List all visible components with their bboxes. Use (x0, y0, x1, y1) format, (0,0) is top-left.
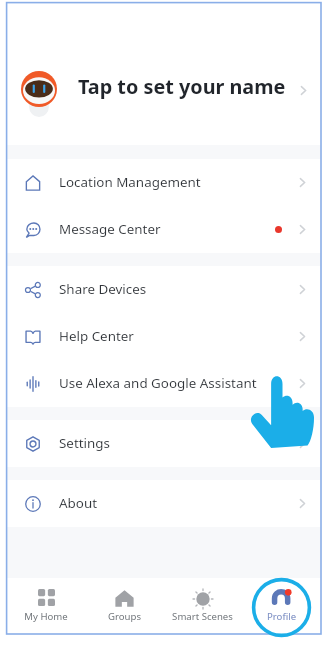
button[interactable]: Message Center (7, 206, 321, 253)
staticText: Use Alexa and Google Assistant (59, 374, 257, 392)
button[interactable]: My Home (7, 578, 85, 634)
staticText: Smart Scenes (172, 610, 233, 623)
button[interactable]: Settings (7, 420, 321, 467)
button[interactable]: About (7, 480, 321, 527)
button[interactable]: Tap to set your name (7, 3, 321, 145)
staticText: Profile (267, 610, 297, 623)
staticText: My Home (24, 610, 68, 623)
button[interactable]: Use Alexa and Google Assistant (7, 360, 321, 407)
staticText: Location Management (59, 173, 201, 191)
button[interactable]: Help Center (7, 313, 321, 360)
button[interactable]: Location Management (7, 159, 321, 206)
staticText: Share Devices (59, 280, 147, 298)
button[interactable]: Groups (85, 578, 163, 634)
staticText: About (59, 494, 98, 512)
staticText: Help Center (59, 327, 134, 345)
staticText: Tap to set your name (78, 73, 286, 100)
button[interactable]: Smart Scenes (163, 578, 242, 634)
button[interactable]: Profile (252, 578, 311, 637)
staticText: Message Center (59, 220, 161, 238)
staticText: Settings (59, 434, 110, 452)
other: Tap hint (250, 376, 315, 448)
staticText: Groups (108, 610, 141, 623)
button[interactable]: Share Devices (7, 266, 321, 313)
